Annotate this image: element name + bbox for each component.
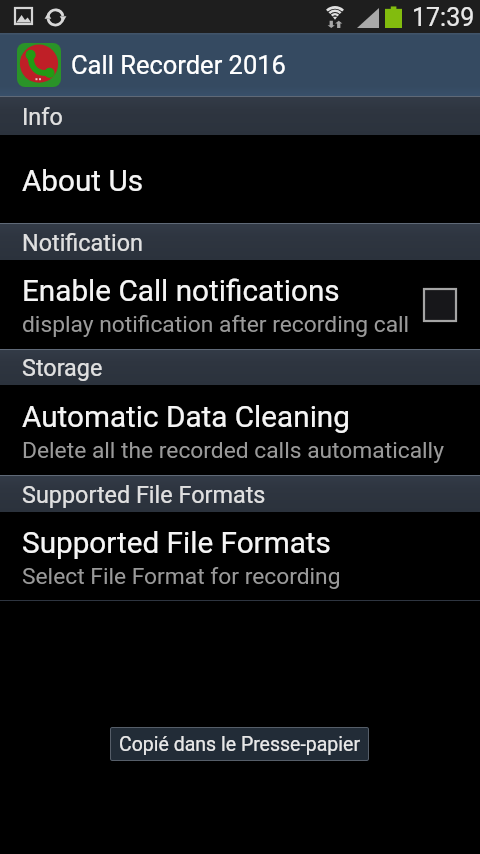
staticText: Enable Call notifications: [22, 273, 340, 308]
staticText: Supported File Formats: [22, 525, 331, 560]
staticText: Copié dans le Presse-papier: [119, 733, 360, 756]
button[interactable]: Enable Call notifications checkbox: [423, 288, 457, 322]
button[interactable]: Storage: [0, 350, 480, 385]
staticText: Notification: [22, 229, 143, 256]
button[interactable]: Supported File Formats: [0, 512, 480, 600]
button[interactable]: Enable Call notifications: [0, 260, 480, 349]
staticText: Automatic Data Cleaning: [22, 399, 350, 434]
staticText: Call Recorder 2016: [71, 50, 286, 80]
staticText: Select File Format for recording: [22, 563, 341, 590]
staticText: Delete all the recorded calls automatica…: [22, 437, 444, 464]
button[interactable]: Notification: [0, 224, 480, 260]
staticText: 17:39: [412, 3, 475, 32]
button[interactable]: Info: [0, 97, 480, 135]
staticText: About Us: [22, 163, 143, 198]
staticText: display notification after recording cal…: [22, 311, 410, 338]
staticText: Supported File Formats: [22, 481, 266, 508]
button[interactable]: Automatic Data Cleaning: [0, 385, 480, 475]
staticText: Storage: [22, 354, 103, 381]
staticText: Info: [22, 103, 63, 130]
button[interactable]: About Us: [0, 135, 480, 223]
button[interactable]: Supported File Formats: [0, 476, 480, 512]
